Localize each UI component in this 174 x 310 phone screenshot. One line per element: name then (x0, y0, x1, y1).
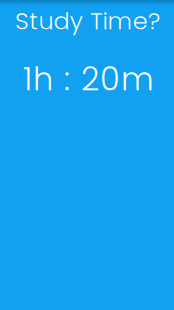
staticText: Study Time? (15, 4, 160, 38)
button[interactable]: 1h : 20m (20, 57, 154, 101)
staticText: 1h : 20m (23, 57, 154, 101)
